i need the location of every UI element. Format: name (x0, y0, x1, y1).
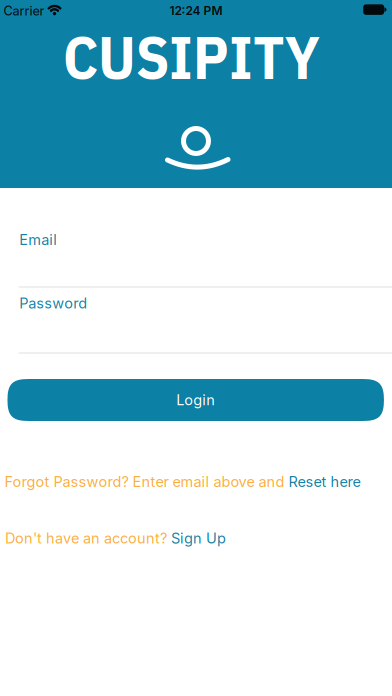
staticText: Password (19, 294, 87, 312)
button[interactable]: Email (0, 231, 392, 288)
button[interactable]: Don't have an account? (5, 529, 226, 547)
staticText: 12:24 PM (169, 3, 222, 18)
staticText: Reset here (288, 473, 360, 491)
button[interactable]: Password (0, 294, 392, 354)
staticText: Login (176, 391, 215, 409)
staticText: Forgot Password? Enter email above and (4, 473, 288, 491)
staticText: Email (19, 231, 57, 249)
button[interactable]: Forgot Password? Enter email above and (4, 473, 360, 491)
button[interactable]: Login (7, 379, 384, 421)
staticText: Carrier (3, 3, 44, 18)
staticText: Sign Up (171, 529, 226, 547)
staticText: Don't have an account? (5, 529, 171, 547)
staticText: CUSIPITY (63, 17, 320, 95)
